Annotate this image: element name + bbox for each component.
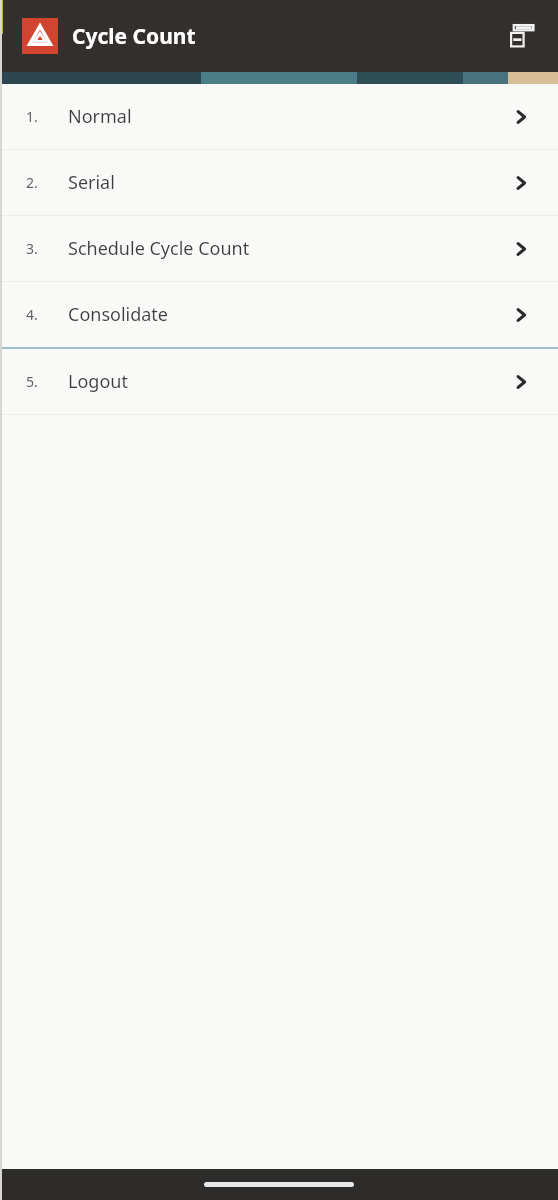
button[interactable]: 3. bbox=[0, 216, 558, 281]
staticText: Cycle Count bbox=[72, 22, 196, 51]
staticText: 2. bbox=[26, 173, 38, 192]
staticText: Consolidate bbox=[68, 302, 169, 327]
staticText: 4. bbox=[26, 305, 38, 324]
button[interactable]: 1. bbox=[0, 84, 558, 149]
button[interactable]: 2. bbox=[0, 150, 558, 215]
button[interactable]: 5. bbox=[0, 349, 558, 414]
staticText: Serial bbox=[68, 170, 115, 195]
staticText: Normal bbox=[68, 104, 132, 129]
button[interactable]: App logo bbox=[22, 18, 58, 54]
staticText: Schedule Cycle Count bbox=[68, 236, 250, 261]
button[interactable]: 4. bbox=[0, 282, 558, 347]
staticText: 1. bbox=[26, 107, 38, 126]
button[interactable]: Change layout bbox=[494, 9, 548, 63]
staticText: 5. bbox=[26, 372, 38, 391]
staticText: Logout bbox=[68, 369, 128, 394]
staticText: 3. bbox=[26, 239, 38, 258]
